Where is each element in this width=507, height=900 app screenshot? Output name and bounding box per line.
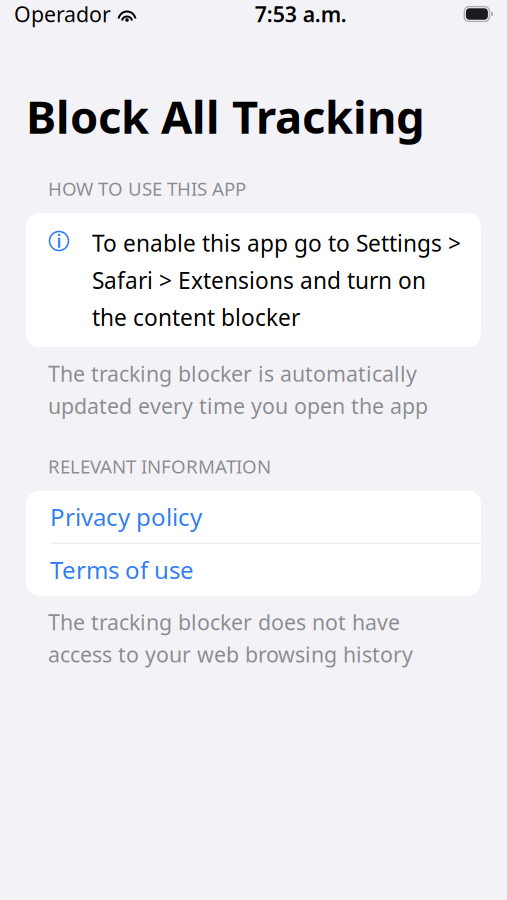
staticText: Terms of use (50, 554, 194, 586)
staticText: RELEVANT INFORMATION (48, 454, 271, 479)
button[interactable]: Privacy policy (26, 491, 481, 543)
staticText: Operador (14, 0, 111, 28)
button[interactable]: Terms of use (26, 544, 481, 596)
staticText: To enable this app go to Settings > Safa… (92, 228, 461, 332)
staticText: The tracking blocker is automatically up… (48, 359, 428, 420)
staticText: Privacy policy (50, 501, 202, 533)
staticText: The tracking blocker does not have acces… (48, 608, 413, 668)
staticText: i (56, 229, 61, 252)
staticText: Block All Tracking (26, 86, 425, 146)
staticText: HOW TO USE THIS APP (48, 176, 246, 201)
staticText: 7:53 a.m. (255, 0, 347, 28)
